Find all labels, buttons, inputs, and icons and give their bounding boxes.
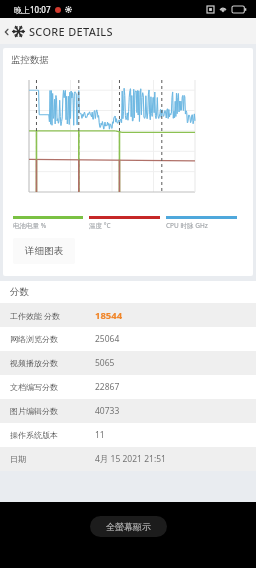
- button[interactable]: 视频播放分数: [0, 351, 256, 375]
- button[interactable]: Back: [0, 18, 256, 44]
- staticText: 视频播放分数: [10, 358, 95, 368]
- staticText: 25064: [95, 333, 120, 345]
- staticText: 5065: [95, 357, 115, 369]
- staticText: 工作效能 分数: [10, 310, 95, 321]
- button[interactable]: 图片编辑分数: [0, 399, 256, 423]
- staticText: 文档编写分数: [10, 382, 95, 392]
- button[interactable]: 文档编写分数: [0, 375, 256, 399]
- staticText: 4月 15 2021 21:51: [95, 453, 166, 465]
- staticText: SCORE DETAILS: [29, 24, 113, 39]
- button[interactable]: 操作系统版本: [0, 423, 256, 447]
- staticText: 晚上10:07: [14, 4, 51, 15]
- staticText: 详细图表: [25, 245, 63, 257]
- staticText: 电池电量 %: [13, 221, 47, 230]
- staticText: 网络浏览分数: [10, 334, 95, 344]
- staticText: 11: [95, 429, 105, 441]
- staticText: 22867: [95, 381, 120, 393]
- staticText: 日期: [10, 454, 95, 464]
- staticText: 图片编辑分数: [10, 406, 95, 416]
- button[interactable]: 工作效能 分数: [0, 303, 256, 327]
- staticText: 40733: [95, 405, 120, 417]
- button[interactable]: 详细图表: [13, 238, 75, 264]
- staticText: 全螢幕顯示: [106, 521, 151, 532]
- staticText: 操作系统版本: [10, 430, 95, 440]
- staticText: 18544: [95, 309, 123, 322]
- button[interactable]: 日期: [0, 447, 256, 471]
- staticText: CPU 时脉 GHz: [166, 221, 208, 230]
- staticText: 温度 °C: [89, 221, 111, 230]
- button[interactable]: 网络浏览分数: [0, 327, 256, 351]
- staticText: 分数: [10, 286, 29, 298]
- staticText: 监控数据: [11, 54, 49, 66]
- button[interactable]: 全螢幕顯示: [90, 516, 167, 537]
